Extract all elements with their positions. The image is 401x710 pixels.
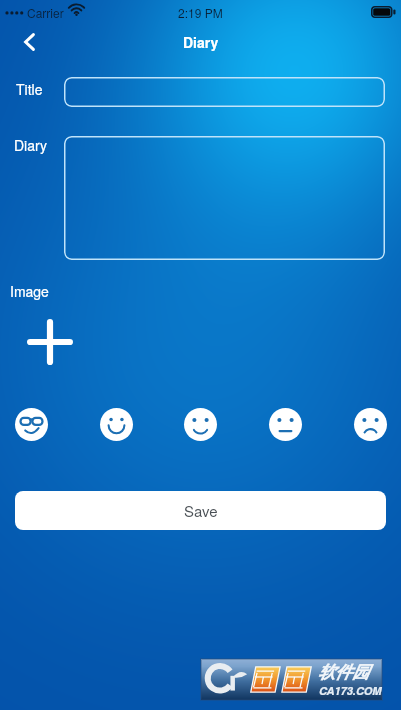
button[interactable]: Back: [8, 26, 52, 58]
button[interactable]: Title input: [64, 77, 385, 107]
staticText: Diary: [183, 32, 219, 52]
button[interactable]: Diary input: [64, 136, 385, 260]
staticText: Carrier: [27, 4, 64, 21]
staticText: 软件园: [318, 662, 369, 683]
staticText: Title: [16, 79, 43, 99]
staticText: Image: [10, 281, 49, 301]
staticText: Save: [184, 500, 218, 521]
staticText: CA173.COM: [319, 683, 382, 699]
button[interactable]: Smiling mood: [180, 404, 220, 444]
button[interactable]: Save: [15, 491, 386, 530]
button[interactable]: Sad mood: [350, 404, 390, 444]
button[interactable]: Neutral mood: [265, 404, 305, 444]
button[interactable]: Add image: [21, 313, 78, 370]
button[interactable]: Happy mood: [96, 404, 136, 444]
staticText: 2:19 PM: [178, 4, 223, 21]
staticText: Diary: [14, 135, 48, 155]
button[interactable]: Cool mood: [11, 404, 51, 444]
